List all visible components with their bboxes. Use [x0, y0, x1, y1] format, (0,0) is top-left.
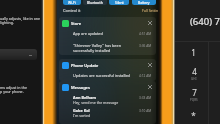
- button[interactable]: Bluetooth: [83, 0, 107, 5]
- staticText: Hey, send me the message: [73, 100, 119, 105]
- staticText: App are updated: [73, 31, 103, 36]
- button[interactable]: Messages: [59, 81, 156, 124]
- button[interactable]: Wi-Fi: [63, 0, 81, 5]
- button[interactable]: 1: [179, 42, 208, 63]
- staticText: "Shimmer Valley" has been successfully i…: [73, 43, 121, 53]
- staticText: 4: [192, 66, 197, 77]
- button[interactable]: *: [179, 105, 208, 124]
- staticText: 4:12 AM: [139, 74, 152, 78]
- staticText: PQRS: [190, 98, 198, 102]
- staticText: 7: [192, 87, 197, 98]
- staticText: I'm sorted: [73, 113, 91, 118]
- staticText: ms adjust in the p your phone.: [0, 85, 27, 94]
- staticText: Full Settings: [142, 8, 163, 13]
- staticText: GHI: [191, 77, 197, 81]
- staticText: 1: [191, 47, 196, 58]
- staticText: Phone Update: [71, 63, 99, 68]
- staticText: Silent: [115, 0, 124, 5]
- staticText: Battery: [138, 0, 150, 5]
- staticText: 3:36 AM: [139, 44, 152, 48]
- button[interactable]: Store: [59, 17, 156, 55]
- staticText: Gabe Kol: [73, 108, 90, 113]
- staticText: Messages: [71, 85, 90, 90]
- staticText: Store: [71, 21, 82, 26]
- button[interactable]: Battery: [132, 0, 156, 5]
- staticText: (640) 74: [190, 15, 220, 28]
- button[interactable]: Dismiss: [147, 62, 153, 68]
- staticText: *: [191, 110, 196, 121]
- button[interactable]: [0, 49, 37, 60]
- staticText: Updates are successful installed: [73, 73, 130, 78]
- staticText: 4:51 AM: [139, 32, 152, 36]
- button[interactable]: Phone Update: [59, 59, 156, 81]
- staticText: Control it: [63, 8, 81, 13]
- staticText: Ann Belham: [73, 95, 96, 100]
- staticText: 3:33 AM: [139, 96, 152, 100]
- button[interactable]: Dismiss: [147, 84, 153, 90]
- button[interactable]: Full Settings: [142, 8, 163, 13]
- staticText: 3:10 AM: [139, 109, 152, 113]
- button[interactable]: Silent: [109, 0, 129, 5]
- staticText: ually adjusts, like in one lighting.: [0, 16, 41, 25]
- staticText: ···: [29, 53, 33, 58]
- button[interactable]: Dismiss: [147, 20, 153, 26]
- button[interactable]: 7: [179, 84, 208, 105]
- button[interactable]: 4: [179, 63, 208, 84]
- staticText: Bluetooth: [87, 0, 103, 5]
- staticText: Wi-Fi: [68, 0, 76, 5]
